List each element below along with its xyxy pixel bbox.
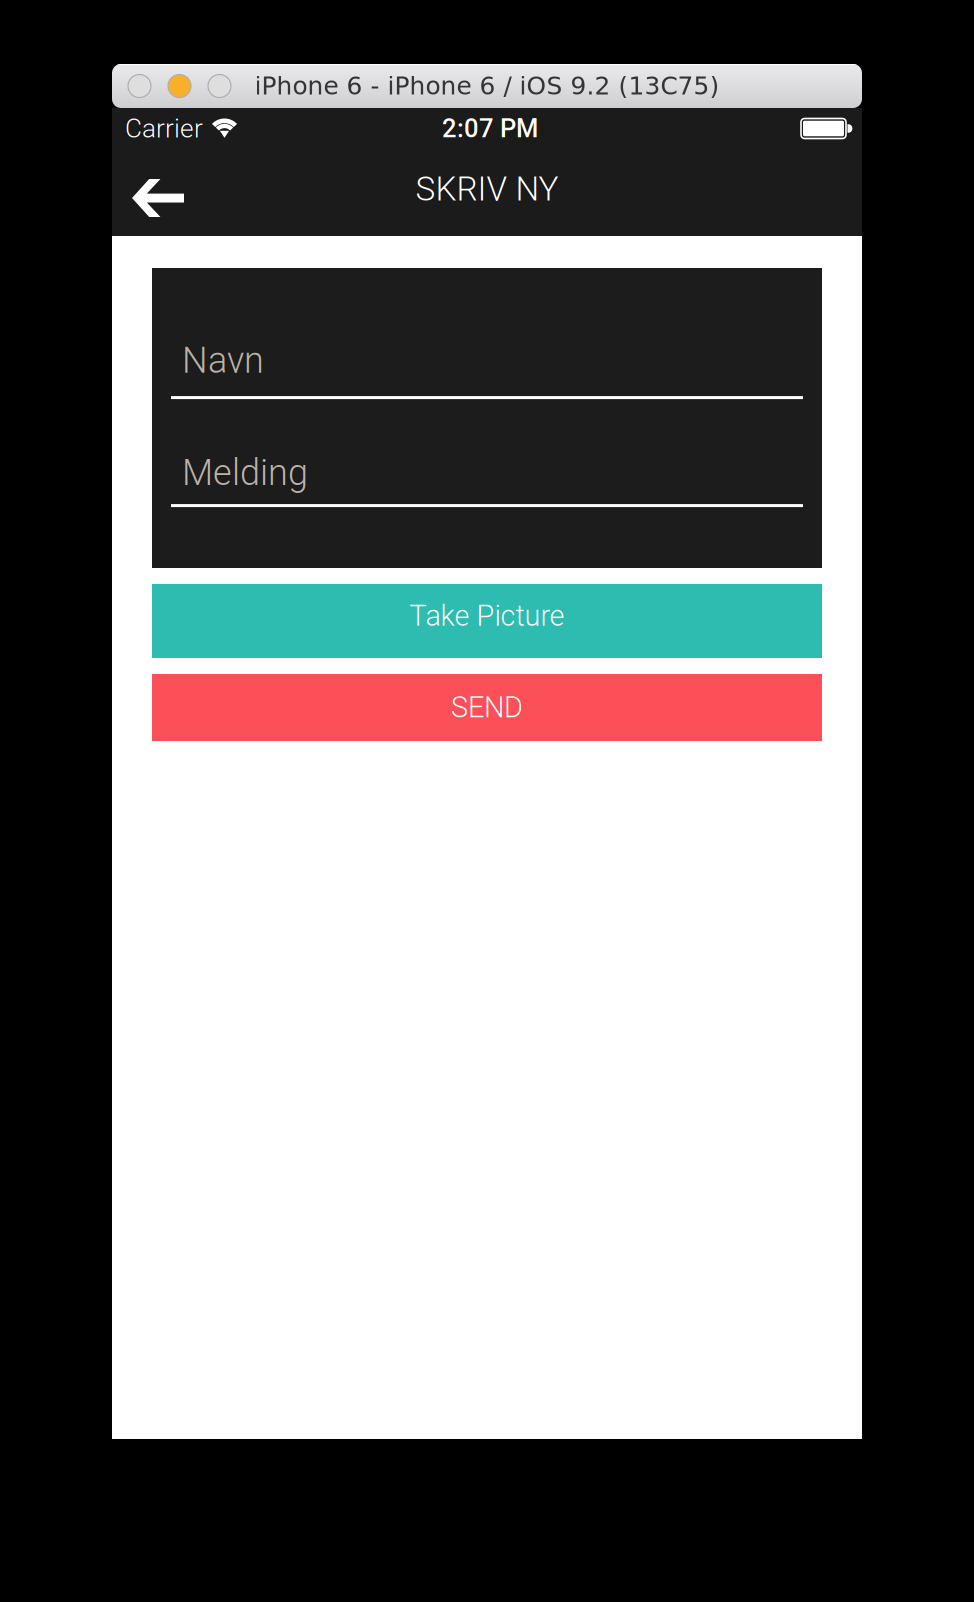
- staticText: Melding: [182, 452, 308, 494]
- button[interactable]: Back: [112, 148, 204, 236]
- staticText: SEND: [451, 691, 523, 724]
- button[interactable]: Minimise: [168, 74, 191, 97]
- staticText: iPhone 6 - iPhone 6 / iOS 9.2 (13C75): [254, 72, 719, 100]
- button[interactable]: Close: [128, 74, 151, 97]
- button[interactable]: Zoom: [208, 74, 231, 97]
- button[interactable]: SEND: [152, 674, 822, 741]
- button[interactable]: Navn: [171, 268, 803, 399]
- staticText: Carrier: [125, 113, 203, 144]
- staticText: 2:07 PM: [442, 113, 538, 143]
- button[interactable]: Take Picture: [152, 584, 822, 658]
- staticText: SKRIV NY: [415, 169, 558, 209]
- button[interactable]: Melding: [171, 399, 803, 507]
- staticText: Navn: [182, 339, 264, 382]
- staticText: Take Picture: [409, 599, 564, 633]
